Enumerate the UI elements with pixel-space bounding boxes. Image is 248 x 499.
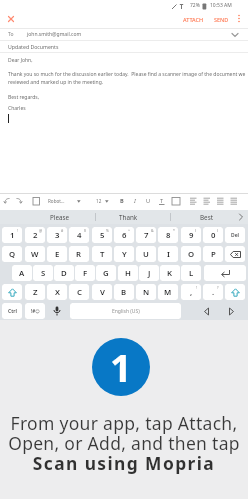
button[interactable] [5, 13, 17, 25]
staticText: @ [39, 228, 43, 233]
staticText: H [125, 268, 131, 279]
staticText: 0 [211, 230, 216, 241]
staticText: I [134, 197, 136, 205]
staticText: 6 [122, 230, 127, 241]
button[interactable]: O [181, 246, 201, 262]
staticText: E [55, 249, 60, 260]
button[interactable]: W [25, 246, 45, 262]
button[interactable]: M [158, 284, 178, 300]
button[interactable]: 5 [92, 227, 112, 243]
button[interactable]: Q [2, 246, 22, 262]
button[interactable] [235, 13, 243, 25]
button[interactable]: K [160, 265, 180, 281]
staticText: , [190, 287, 193, 298]
staticText: From your app, tap Attach, [0, 411, 248, 435]
button[interactable]: L [181, 265, 201, 281]
staticText: Best regards, [8, 94, 40, 101]
button[interactable] [204, 265, 246, 281]
staticText: ( [195, 228, 197, 233]
button[interactable]: 9 [181, 227, 201, 243]
button[interactable]: R [69, 246, 89, 262]
staticText: ! [17, 228, 18, 233]
staticText: 8 [166, 230, 171, 241]
button[interactable]: !#☺ [25, 303, 45, 319]
button[interactable] [225, 284, 245, 300]
button[interactable]: . [203, 284, 223, 300]
staticText: $ [84, 228, 87, 233]
button[interactable]: SEND [211, 13, 231, 25]
button[interactable]: Del [225, 227, 245, 243]
button[interactable]: 7 [136, 227, 156, 243]
button[interactable]: 6 [114, 227, 134, 243]
button[interactable]: V [92, 284, 112, 300]
button[interactable]: X [47, 284, 67, 300]
button[interactable]: C [69, 284, 89, 300]
staticText: D [61, 268, 67, 279]
button[interactable]: Z [25, 284, 45, 300]
staticText: john.smith@gmail.com [27, 31, 82, 38]
staticText: ? [217, 285, 219, 290]
button[interactable]: 3 [47, 227, 67, 243]
button[interactable]: U [136, 246, 156, 262]
staticText: 10:53 AM [210, 2, 232, 9]
button[interactable] [47, 303, 67, 319]
button[interactable]: 4 [69, 227, 89, 243]
button[interactable]: ATTACH [180, 13, 207, 25]
staticText: Ctrl [8, 308, 17, 315]
button[interactable]: 1 [2, 227, 22, 243]
button[interactable]: D [54, 265, 74, 281]
button[interactable]: English (US) [70, 303, 181, 319]
button[interactable]: I [158, 246, 178, 262]
button[interactable] [225, 246, 245, 262]
staticText: J [148, 268, 151, 279]
button[interactable]: B [114, 284, 134, 300]
staticText: C [77, 287, 82, 298]
staticText: 12 [96, 198, 102, 204]
staticText: ) [217, 228, 219, 233]
button[interactable]: , [181, 284, 201, 300]
button[interactable]: F [75, 265, 95, 281]
staticText: T [100, 249, 105, 260]
button[interactable]: Please [30, 210, 90, 224]
staticText: I [167, 249, 170, 260]
staticText: % [106, 228, 109, 233]
button[interactable] [2, 284, 22, 300]
button[interactable]: 0 [203, 227, 223, 243]
staticText: G [103, 268, 109, 279]
button[interactable]: T [92, 246, 112, 262]
staticText: Thank you so much for the discussion ear… [8, 71, 246, 78]
staticText: S [41, 268, 46, 279]
button[interactable]: 2 [25, 227, 45, 243]
staticText: * [173, 228, 175, 233]
staticText: 72% [190, 2, 200, 9]
staticText: W [31, 249, 39, 260]
button[interactable]: J [139, 265, 159, 281]
button[interactable]: Thank [98, 210, 158, 224]
staticText: K [167, 268, 173, 279]
button[interactable]: 8 [158, 227, 178, 243]
button[interactable]: N [136, 284, 156, 300]
staticText: 1 [10, 230, 15, 241]
staticText: R [76, 249, 82, 260]
button[interactable]: A [12, 265, 32, 281]
staticText: Z [33, 287, 38, 298]
button[interactable] [196, 303, 216, 319]
button[interactable]: S [33, 265, 53, 281]
button[interactable] [221, 303, 241, 319]
staticText: Scan using Mopria [0, 451, 248, 475]
staticText: O [188, 249, 195, 260]
staticText: !#☺ [31, 308, 40, 314]
button[interactable]: P [203, 246, 223, 262]
staticText: U [146, 197, 151, 205]
staticText: P [211, 249, 216, 260]
button[interactable]: Best [176, 210, 236, 224]
button[interactable]: H [118, 265, 138, 281]
staticText: . [212, 287, 215, 298]
button[interactable]: E [47, 246, 67, 262]
button[interactable]: Ctrl [2, 303, 22, 319]
staticText: Robot... [48, 198, 65, 204]
staticText: Y [122, 249, 127, 260]
button[interactable]: Y [114, 246, 134, 262]
button[interactable]: G [96, 265, 116, 281]
staticText: Q [9, 249, 16, 260]
